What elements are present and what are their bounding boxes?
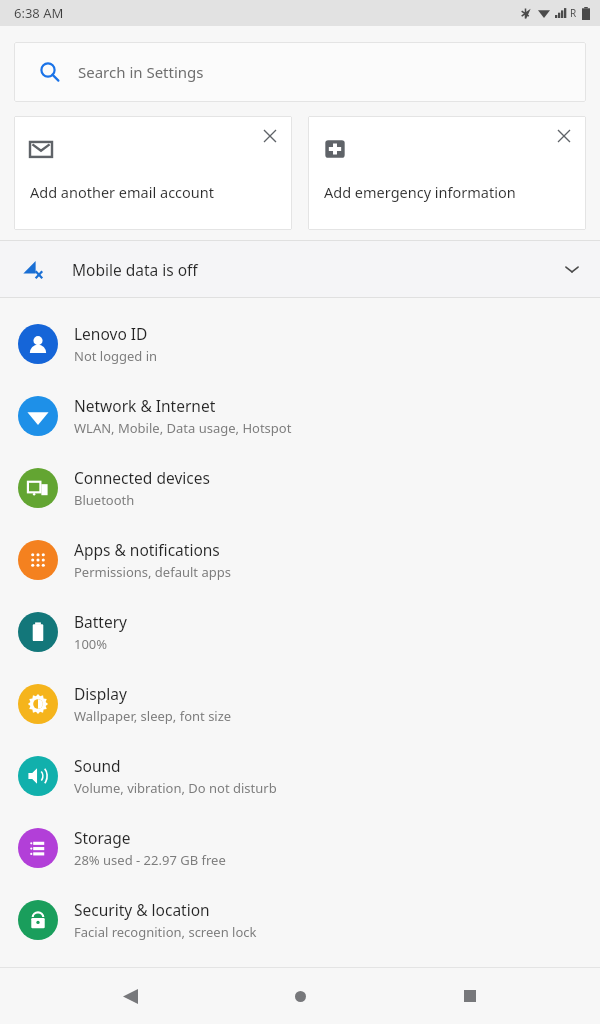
staticText: Apps & notifications <box>74 539 220 560</box>
button[interactable]: Dismiss <box>550 122 578 150</box>
staticText: R <box>570 6 577 20</box>
button[interactable]: Connected devices <box>0 452 600 524</box>
button[interactable]: Dismiss <box>308 116 586 230</box>
staticText: 28% used - 22.97 GB free <box>74 851 226 869</box>
button[interactable]: Home <box>278 974 322 1018</box>
staticText: Search in Settings <box>78 62 204 82</box>
staticText: Lenovo ID <box>74 323 148 344</box>
staticText: Permissions, default apps <box>74 563 231 581</box>
button[interactable]: Dismiss <box>14 116 292 230</box>
button[interactable]: Security & location <box>0 884 600 956</box>
staticText: Facial recognition, screen lock <box>74 923 257 941</box>
staticText: 6:38 AM <box>14 4 64 22</box>
staticText: Not logged in <box>74 347 158 365</box>
staticText: Storage <box>74 827 131 848</box>
button[interactable]: Recent apps <box>448 974 492 1018</box>
staticText: Volume, vibration, Do not disturb <box>74 779 277 797</box>
button[interactable]: Mobile data is off <box>0 241 600 297</box>
staticText: Sound <box>74 755 121 776</box>
staticText: WLAN, Mobile, Data usage, Hotspot <box>74 419 292 437</box>
button[interactable]: Back <box>108 974 152 1018</box>
staticText: Security & location <box>74 899 210 920</box>
button[interactable]: Network & Internet <box>0 380 600 452</box>
button[interactable]: Sound <box>0 740 600 812</box>
button[interactable]: Display <box>0 668 600 740</box>
staticText: 100% <box>74 635 108 653</box>
button[interactable]: Apps & notifications <box>0 524 600 596</box>
staticText: Mobile data is off <box>72 259 198 280</box>
button[interactable]: Battery <box>0 596 600 668</box>
button[interactable]: Dismiss <box>256 122 284 150</box>
staticText: Battery <box>74 611 128 632</box>
other: Search <box>40 62 60 82</box>
button[interactable]: Lenovo ID <box>0 308 600 380</box>
staticText: Add another email account <box>30 182 214 202</box>
staticText: Wallpaper, sleep, font size <box>74 707 232 725</box>
staticText: Network & Internet <box>74 395 216 416</box>
staticText: Add emergency information <box>324 182 516 202</box>
button[interactable]: Search <box>14 42 586 102</box>
staticText: Connected devices <box>74 467 210 488</box>
staticText: Display <box>74 683 127 704</box>
button[interactable]: Storage <box>0 812 600 884</box>
other: Expand <box>564 261 580 277</box>
staticText: Bluetooth <box>74 491 135 509</box>
